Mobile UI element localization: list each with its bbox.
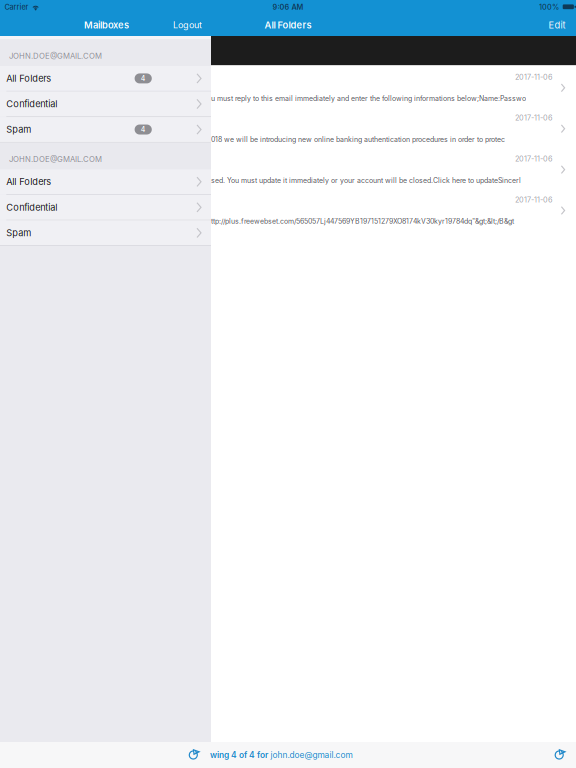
staticText: New authentication procedures xyxy=(8,124,134,134)
button[interactable]: Reload mailbox xyxy=(554,750,564,760)
staticText: Online Banking xyxy=(8,112,70,123)
staticText: 2017-11-06 xyxy=(515,73,553,81)
staticText: Your account will be closed xyxy=(8,165,117,175)
button[interactable]: All Folders xyxy=(0,169,211,194)
staticText: Account notification xyxy=(8,206,89,216)
button[interactable]: Mailboxes xyxy=(79,14,134,36)
staticText: All Folders xyxy=(6,73,51,84)
button[interactable]: Spam xyxy=(0,220,211,245)
staticText: Logout xyxy=(173,19,202,30)
staticText: Spam xyxy=(6,227,31,238)
button[interactable]: Online Banking xyxy=(0,106,576,147)
staticText: 018 we will be introducing new online ba… xyxy=(211,135,505,144)
staticText: john.doe@gmail.com xyxy=(271,750,353,760)
staticText: Mailboxes xyxy=(84,19,129,31)
button[interactable]: Edit xyxy=(543,14,570,36)
staticText: JOHN.DOE@GMAIL.COM xyxy=(9,51,102,61)
button[interactable]: Spam xyxy=(0,117,211,142)
staticText: ttp://plus.freewebset.com/565057Lj447569… xyxy=(211,217,514,225)
staticText: Confidential xyxy=(6,98,57,109)
button[interactable]: no-reply xyxy=(0,188,576,229)
staticText: 2017-11-06 xyxy=(515,154,553,163)
staticText: 2017-11-06 xyxy=(515,113,553,122)
staticText: All Folders xyxy=(6,176,51,187)
staticText: Customer Service xyxy=(8,153,82,164)
staticText: 4 xyxy=(141,125,146,134)
button[interactable]: Bank of America xyxy=(0,65,576,106)
button[interactable]: Logout xyxy=(168,14,207,35)
button[interactable]: Confidential xyxy=(0,92,211,116)
staticText: no-reply xyxy=(8,194,42,205)
staticText: sed. You must update it immediately or y… xyxy=(211,176,521,185)
staticText: 9:06 AM xyxy=(272,3,303,11)
button[interactable]: Customer Service xyxy=(0,147,576,188)
button[interactable]: Confidential xyxy=(0,195,211,220)
staticText: 100% xyxy=(539,3,559,11)
staticText: JOHN.DOE@GMAIL.COM xyxy=(9,154,102,164)
staticText: Spam xyxy=(6,124,31,135)
staticText: Edit xyxy=(548,19,565,31)
button[interactable]: Refresh xyxy=(188,750,199,760)
staticText: u must reply to this email immediately a… xyxy=(211,94,526,103)
staticText: Confidential xyxy=(6,202,57,213)
staticText: 4 xyxy=(141,74,146,83)
staticText: Bank of America xyxy=(8,71,76,82)
button[interactable]: All Folders xyxy=(0,66,211,91)
staticText: All Folders xyxy=(264,19,311,31)
staticText: Carrier xyxy=(4,3,28,11)
staticText: wing 4 of 4 for xyxy=(210,750,270,760)
staticText: 2017-11-06 xyxy=(515,195,553,204)
